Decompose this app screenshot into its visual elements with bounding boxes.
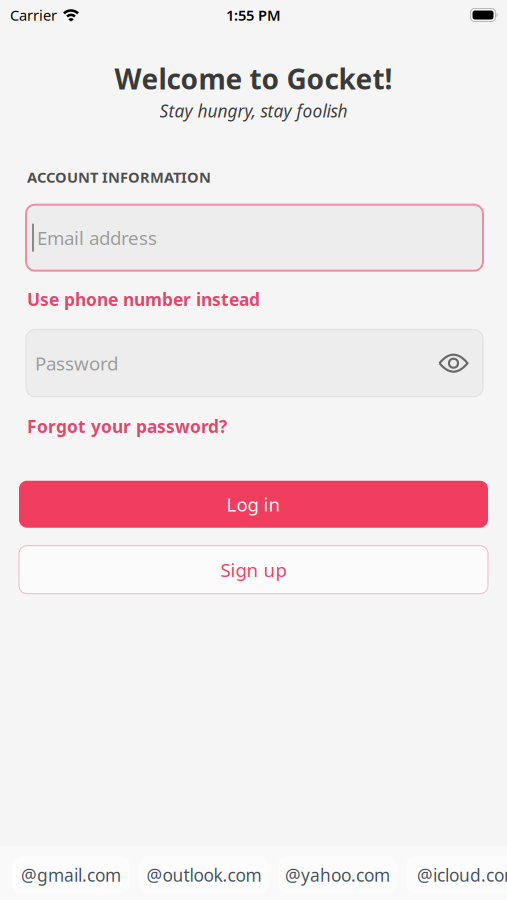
button[interactable]: Use phone number instead <box>27 288 260 311</box>
staticText: Stay hungry, stay foolish <box>159 99 347 122</box>
staticText: ACCOUNT INFORMATION <box>27 167 211 187</box>
staticText: 1:55 PM <box>226 5 281 25</box>
staticText: Forgot your password? <box>27 415 227 438</box>
staticText: @gmail.com <box>21 863 121 886</box>
button[interactable]: @yahoo.com <box>278 856 397 894</box>
staticText: Log in <box>226 492 280 517</box>
button[interactable]: @icloud.com <box>406 856 507 894</box>
button[interactable]: @gmail.com <box>12 856 130 894</box>
staticText: Sign up <box>220 557 286 582</box>
staticText: Welcome to Gocket! <box>114 60 392 97</box>
staticText: Carrier <box>10 5 57 25</box>
button[interactable]: @outlook.com <box>139 856 269 894</box>
button[interactable]: Sign up <box>19 546 488 594</box>
staticText: @outlook.com <box>146 863 261 886</box>
button[interactable]: Log in <box>19 481 488 528</box>
button[interactable]: Forgot your password? <box>27 415 227 438</box>
button[interactable]: Show password <box>438 353 469 373</box>
staticText: Email address <box>37 225 157 250</box>
staticText: Use phone number instead <box>27 288 260 311</box>
staticText: @yahoo.com <box>285 863 390 886</box>
staticText: Password <box>35 351 118 376</box>
staticText: @icloud.com <box>417 863 507 886</box>
